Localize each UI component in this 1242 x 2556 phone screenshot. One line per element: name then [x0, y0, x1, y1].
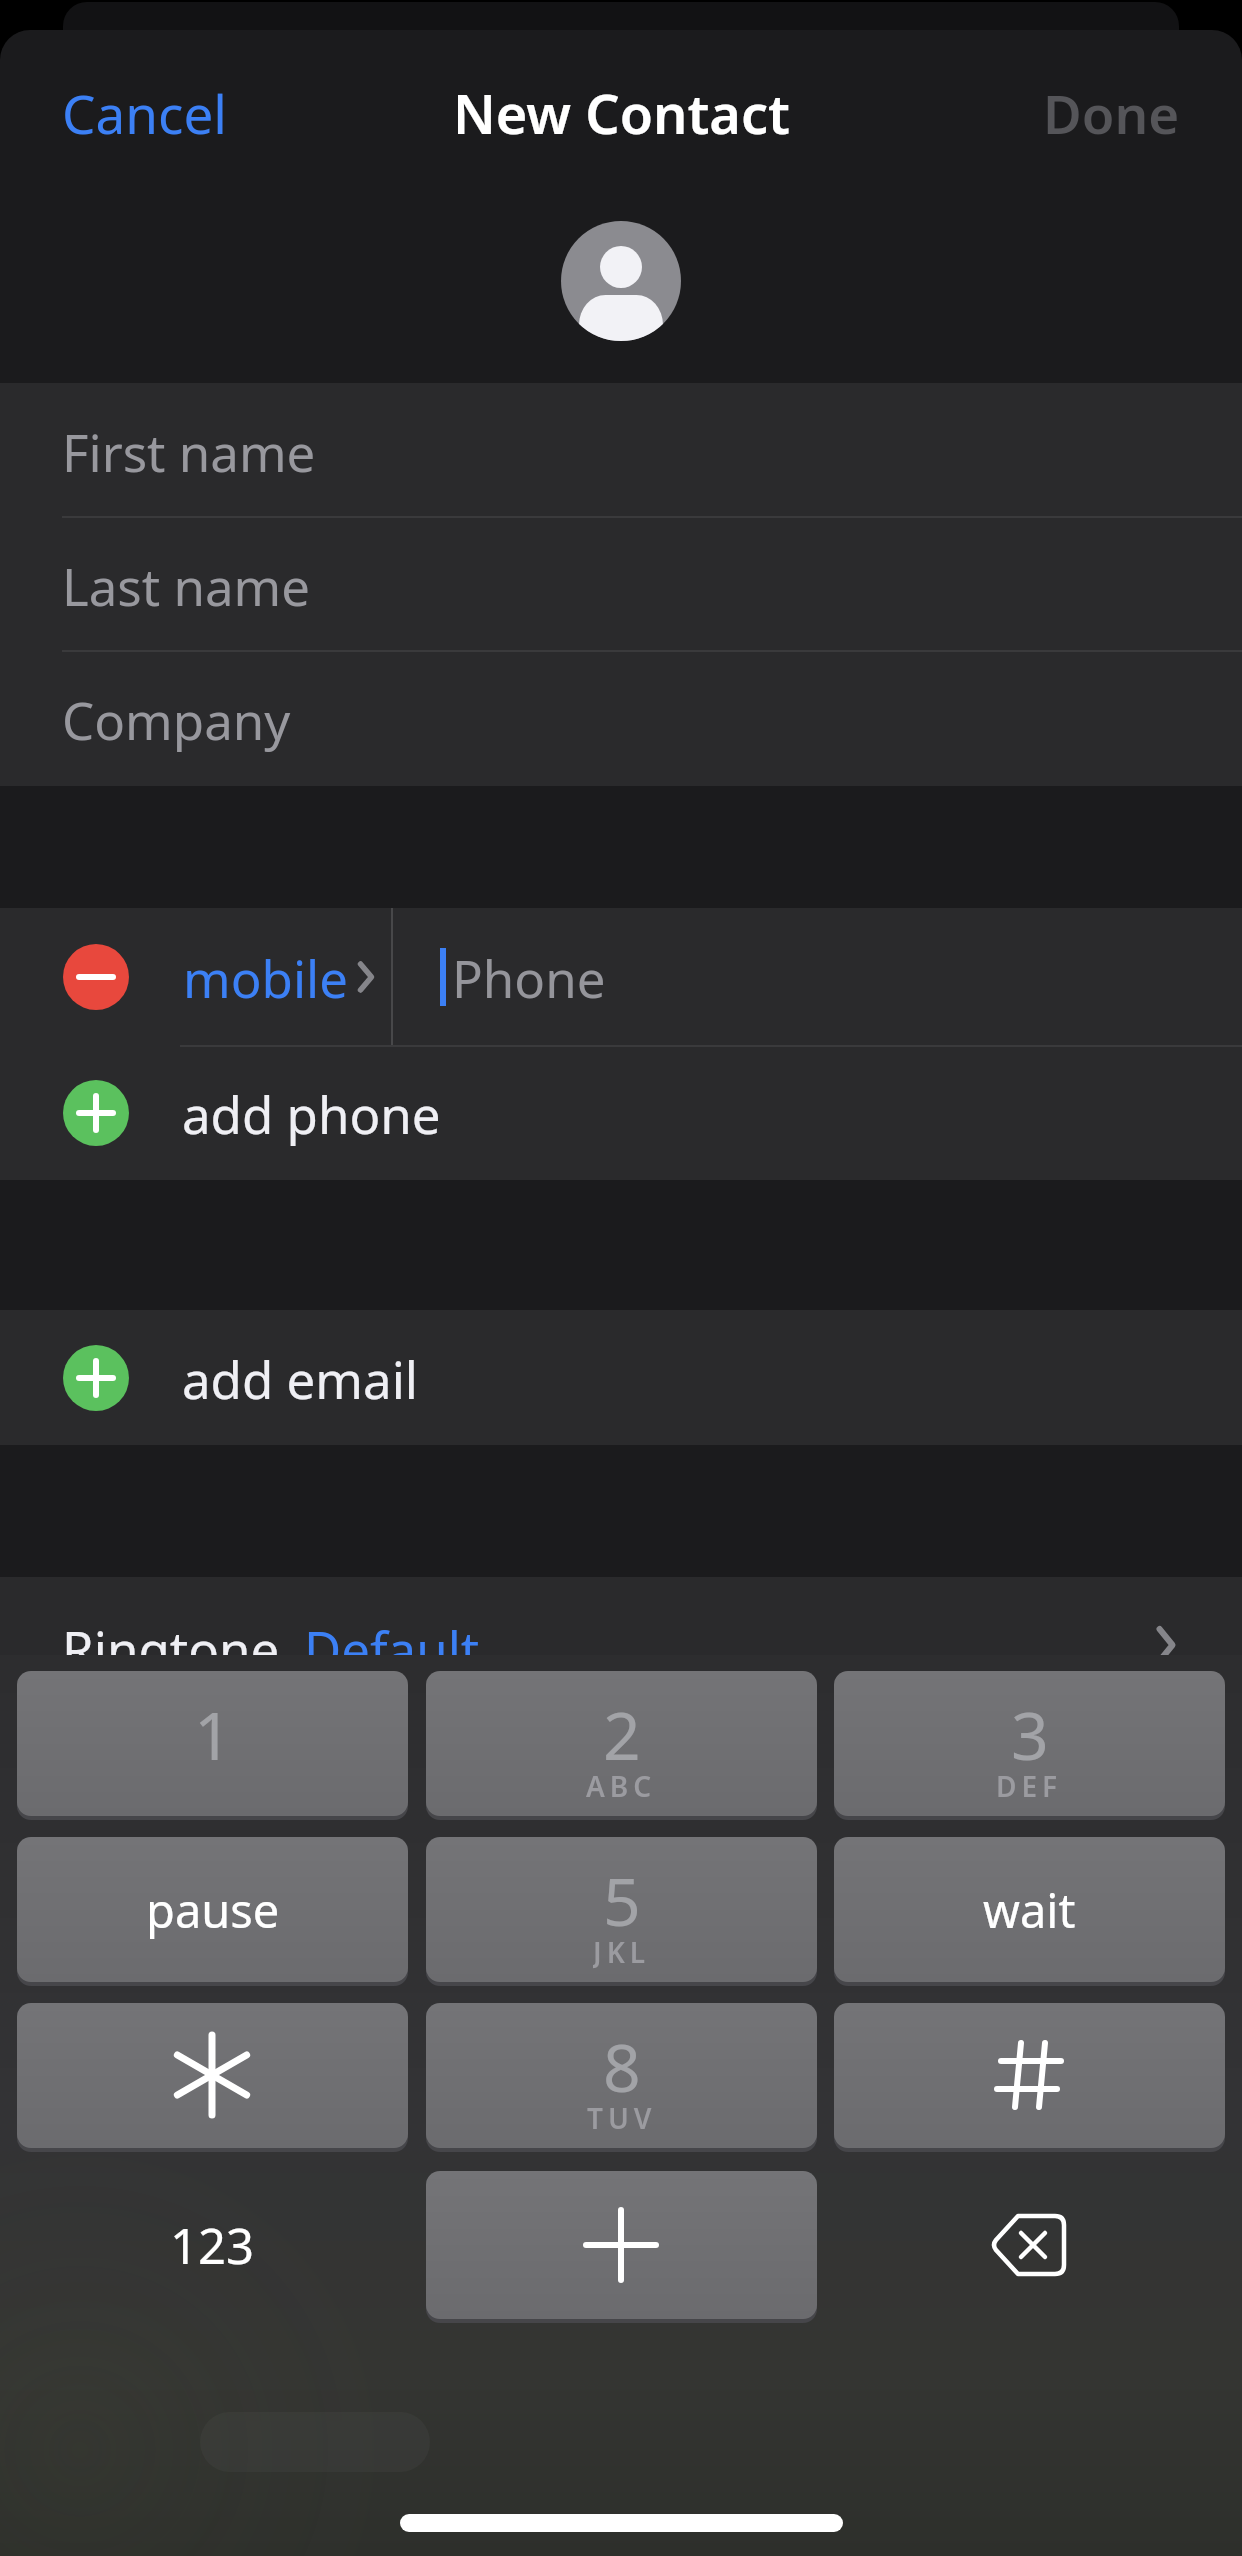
staticText: Phone — [452, 943, 606, 1012]
button[interactable] — [561, 221, 681, 341]
staticText: DEF — [996, 1767, 1063, 1803]
staticText: 123 — [170, 2212, 255, 2279]
staticText: JKL — [593, 1933, 651, 1969]
button[interactable]: add phone — [182, 1063, 441, 1163]
staticText: New Contact — [453, 76, 790, 150]
staticText: 3 — [1011, 1689, 1049, 1767]
button[interactable]: 3 — [834, 1671, 1225, 1816]
button[interactable]: 8 — [426, 2003, 817, 2148]
button[interactable] — [63, 944, 129, 1010]
staticText: ABC — [586, 1767, 657, 1803]
button[interactable]: 5 — [426, 1837, 817, 1982]
staticText: add phone — [182, 1079, 441, 1148]
staticText: add email — [182, 1344, 418, 1413]
staticText: Default — [304, 1614, 480, 1683]
button[interactable]: 1 — [17, 1671, 408, 1816]
button[interactable] — [63, 1080, 129, 1146]
button[interactable] — [160, 908, 392, 1046]
staticText: Company — [62, 685, 291, 754]
staticText: Last name — [62, 551, 311, 620]
staticText: pause — [146, 1878, 280, 1942]
staticText: Cancel — [62, 77, 227, 149]
staticText: mobile — [183, 943, 348, 1012]
button[interactable]: Done — [980, 63, 1180, 163]
staticText: Ringtone — [62, 1614, 280, 1683]
button[interactable]: wait — [834, 1837, 1225, 1982]
button[interactable]: 123 — [17, 2171, 408, 2319]
button[interactable]: 2 — [426, 1671, 817, 1816]
button[interactable] — [834, 2003, 1225, 2148]
button[interactable] — [0, 1577, 1242, 1687]
button[interactable]: Company — [62, 669, 291, 769]
staticText: 2 — [603, 1689, 641, 1767]
button[interactable]: Cancel — [62, 63, 227, 163]
staticText: Done — [1043, 77, 1180, 149]
button[interactable] — [17, 2003, 408, 2148]
button[interactable]: First name — [62, 401, 316, 501]
staticText: First name — [62, 417, 316, 486]
button[interactable] — [969, 2200, 1089, 2290]
button[interactable]: Last name — [62, 535, 311, 635]
staticText: TUV — [587, 2099, 657, 2135]
button[interactable]: pause — [17, 1837, 408, 1982]
staticText: 1 — [194, 1689, 232, 1767]
button[interactable] — [426, 2171, 817, 2319]
staticText: 5 — [603, 1855, 641, 1933]
staticText: 8 — [603, 2021, 641, 2099]
staticText: wait — [983, 1878, 1076, 1942]
button[interactable]: add email — [182, 1328, 418, 1428]
button[interactable] — [63, 1345, 129, 1411]
